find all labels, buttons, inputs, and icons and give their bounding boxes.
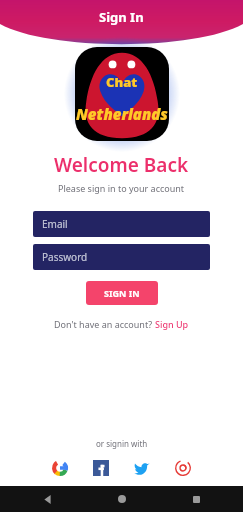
staticText: Password [42, 250, 88, 264]
staticText: Email [42, 217, 68, 231]
button[interactable]: Sign in with Facebook [91, 458, 111, 478]
staticText: Sign In [99, 8, 144, 26]
staticText: Welcome Back [54, 152, 189, 178]
button[interactable]: Home [111, 488, 133, 510]
button[interactable]: Back [36, 488, 58, 510]
staticText: Sign Up [155, 318, 189, 330]
staticText: SIGN IN [104, 287, 140, 299]
button[interactable]: SIGN IN [86, 281, 158, 305]
staticText: Chat [106, 73, 138, 91]
button[interactable]: Recent apps [185, 488, 207, 510]
button[interactable]: Sign in with Google [50, 458, 70, 478]
staticText: or signin with [96, 438, 148, 449]
staticText: Don't have an account? [54, 318, 155, 330]
button[interactable]: Password [33, 244, 210, 270]
button[interactable]: Sign Up [155, 318, 189, 330]
button[interactable]: Email [33, 211, 210, 237]
button[interactable]: Sign in with Email [173, 458, 193, 478]
staticText: Netherlands [76, 104, 168, 124]
staticText: Please sign in to your account [58, 182, 185, 194]
button[interactable]: Sign in with Twitter [132, 458, 152, 478]
